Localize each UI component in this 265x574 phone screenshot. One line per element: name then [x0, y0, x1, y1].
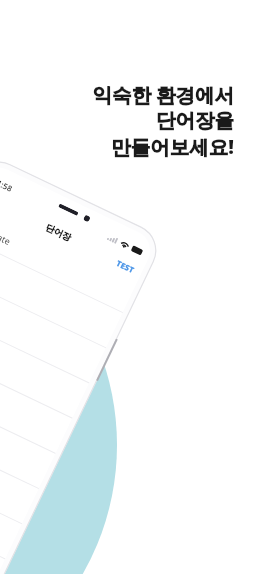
button[interactable] [0, 267, 106, 383]
button[interactable]: Create [0, 224, 13, 247]
button[interactable]: TEST [115, 257, 136, 275]
button[interactable] [0, 338, 73, 453]
staticText: 11:58 [0, 175, 15, 194]
button[interactable] [0, 302, 89, 418]
button[interactable] [0, 373, 56, 488]
button[interactable] [0, 443, 22, 559]
staticText: TEST [115, 257, 136, 275]
staticText: 익숙한 환경에서 [92, 81, 234, 108]
button[interactable] [0, 408, 39, 523]
staticText: Create [0, 224, 13, 247]
staticText: 만들어보세요! [111, 133, 234, 160]
staticText: 단어장을 [156, 108, 234, 133]
button[interactable] [0, 478, 6, 574]
button[interactable] [0, 232, 123, 347]
staticText: 단어장 [44, 221, 73, 243]
